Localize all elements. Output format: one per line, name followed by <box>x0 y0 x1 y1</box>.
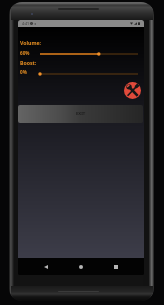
button[interactable]: Tools <box>124 82 141 99</box>
staticText: 60% <box>20 50 30 56</box>
staticText: Volume: <box>20 39 42 46</box>
button[interactable]: EXIT <box>18 105 143 123</box>
staticText: 0% <box>20 69 27 75</box>
button[interactable]: Home <box>74 260 88 274</box>
other: Settings <box>30 22 33 25</box>
staticText: Boost: <box>20 59 37 66</box>
staticText: 4:41 <box>22 21 30 26</box>
button[interactable]: Slider <box>40 71 138 77</box>
button[interactable]: Back <box>39 260 53 274</box>
staticText: EXIT <box>76 111 86 117</box>
button[interactable]: Slider <box>40 51 138 57</box>
button[interactable]: Recents <box>109 260 123 274</box>
